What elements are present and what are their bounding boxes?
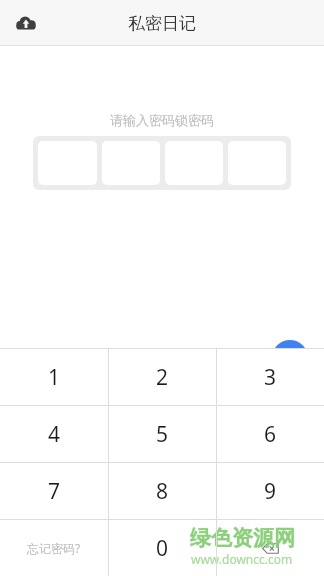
button[interactable]: 8 (108, 463, 216, 519)
staticText: 绿色资源网 (190, 525, 295, 551)
button[interactable]: Add (272, 340, 308, 376)
staticText: www.downcc.com (191, 551, 293, 567)
staticText: 忘记密码? (27, 540, 81, 556)
button[interactable]: 1 (0, 349, 108, 405)
staticText: 2 (156, 363, 169, 392)
staticText: 5 (156, 420, 169, 449)
button[interactable]: 6 (216, 406, 324, 462)
button[interactable]: 2 (108, 349, 216, 405)
staticText: 请输入密码锁密码 (0, 112, 324, 128)
staticText: 4 (48, 420, 61, 449)
button[interactable]: 4 (0, 406, 108, 462)
button[interactable]: 0 (108, 520, 216, 576)
button[interactable]: 忘记密码? (0, 520, 108, 576)
staticText: 3 (264, 363, 277, 392)
button[interactable]: Delete (216, 520, 324, 576)
staticText: 7 (48, 477, 61, 506)
button[interactable]: 7 (0, 463, 108, 519)
button[interactable]: 3 (216, 349, 324, 405)
button[interactable]: 5 (108, 406, 216, 462)
staticText: 9 (264, 477, 277, 506)
staticText: 8 (156, 477, 169, 506)
button[interactable]: Upload to cloud (6, 3, 46, 43)
button[interactable]: 9 (216, 463, 324, 519)
staticText: 私密日记 (128, 13, 196, 34)
staticText: 1 (48, 363, 61, 392)
staticText: 6 (264, 420, 277, 449)
staticText: 0 (156, 534, 169, 563)
